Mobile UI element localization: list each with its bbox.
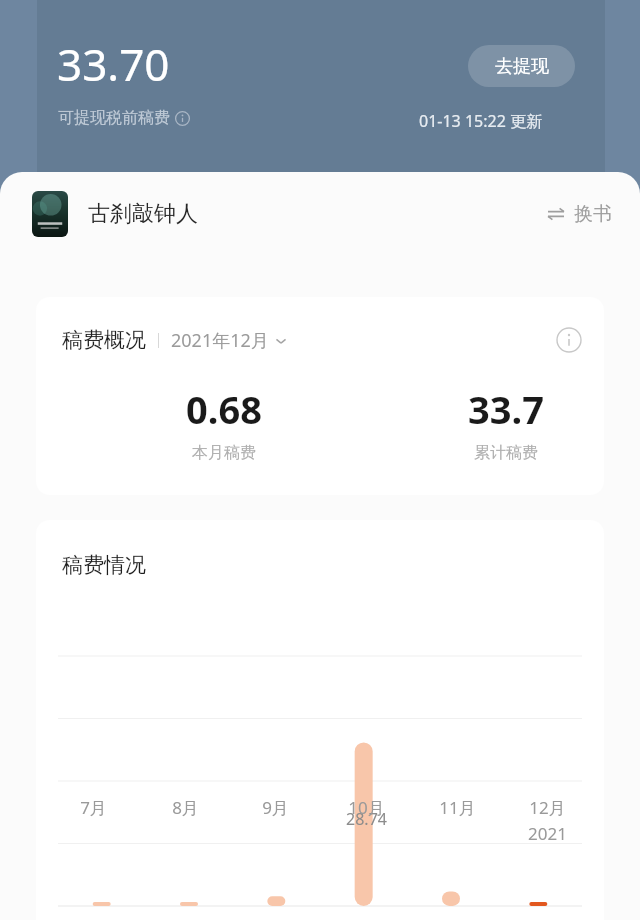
- staticText: 本月稿费: [192, 443, 256, 463]
- staticText: 9月: [262, 796, 289, 819]
- staticText: 28.74: [346, 808, 387, 830]
- staticText: 去提现: [495, 55, 549, 78]
- staticText: 12月: [529, 796, 566, 819]
- staticText: 8月: [172, 796, 199, 819]
- staticText: 累计稿费: [474, 443, 538, 463]
- staticText: 稿费概况: [62, 327, 146, 353]
- staticText: 33.70: [57, 34, 170, 94]
- button[interactable]: 2021年12月: [171, 328, 287, 353]
- staticText: 2021: [528, 822, 567, 845]
- other: 换书: [546, 204, 566, 224]
- staticText: 古刹敲钟人: [88, 200, 198, 228]
- staticText: 11月: [439, 796, 476, 819]
- staticText: 可提现税前稿费: [58, 108, 170, 128]
- staticText: 0.68: [186, 383, 262, 435]
- staticText: 2021年12月: [171, 328, 269, 353]
- button[interactable]: 古刹敲钟人: [0, 172, 640, 256]
- button[interactable]: 说明: [556, 327, 582, 353]
- staticText: 33.7: [468, 383, 544, 435]
- button[interactable]: 换书: [546, 202, 612, 226]
- staticText: 7月: [80, 796, 107, 819]
- staticText: 稿费情况: [62, 552, 146, 578]
- staticText: 10月: [348, 796, 385, 819]
- staticText: 01-13 15:22 更新: [419, 110, 542, 132]
- button[interactable]: 去提现: [468, 45, 575, 87]
- button[interactable]: 稿费概况: [36, 297, 604, 495]
- staticText: 换书: [574, 202, 612, 226]
